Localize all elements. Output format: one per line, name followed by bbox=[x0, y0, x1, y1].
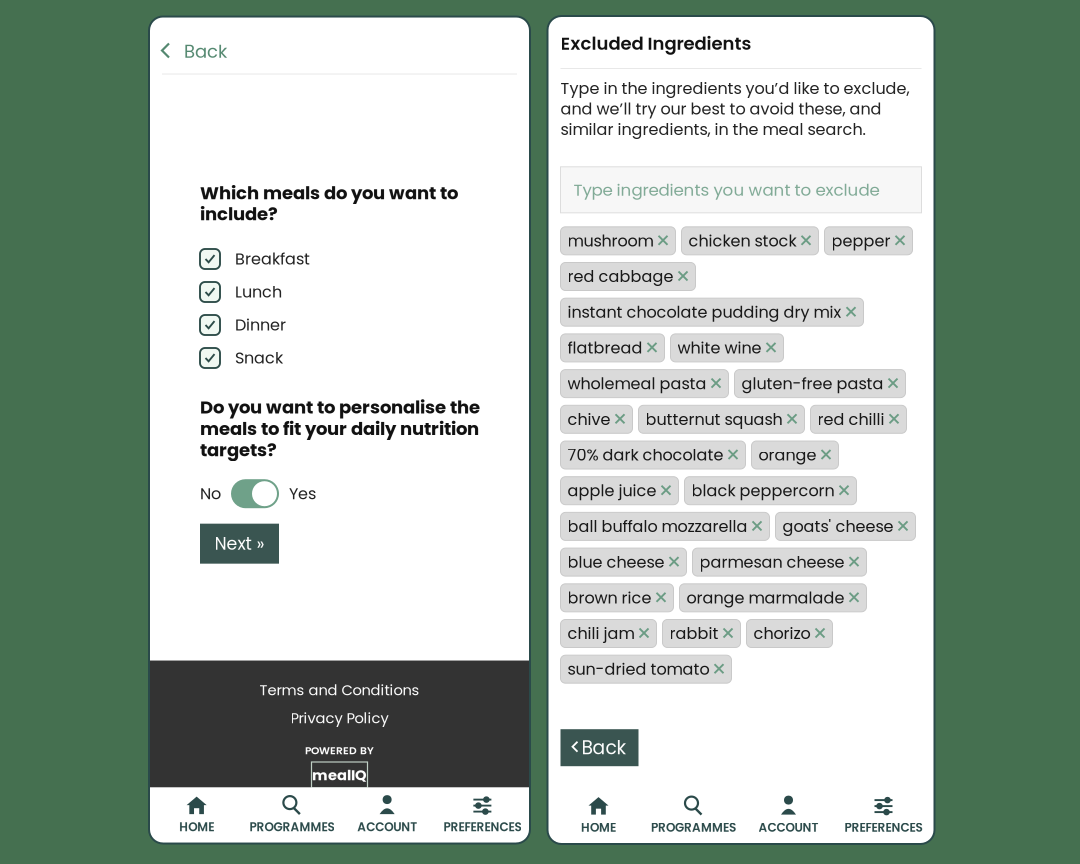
button[interactable]: brown rice bbox=[560, 584, 673, 612]
staticText: ball buffalo mozzarella bbox=[567, 515, 747, 538]
staticText: ACCOUNT bbox=[357, 819, 417, 835]
staticText: gluten-free pasta bbox=[741, 372, 883, 395]
staticText: red cabbage bbox=[567, 265, 673, 288]
button[interactable]: chicken stock bbox=[681, 227, 818, 255]
button[interactable]: goats' cheese bbox=[775, 512, 915, 540]
staticText: Terms and Conditions bbox=[259, 680, 419, 700]
staticText: Do you want to personalise the bbox=[200, 395, 480, 420]
button[interactable]: orange bbox=[751, 441, 838, 469]
button[interactable]: PROGRAMMES bbox=[646, 796, 741, 836]
staticText: white wine bbox=[677, 337, 761, 359]
button[interactable]: Lunch bbox=[200, 275, 479, 308]
staticText: POWERED BY bbox=[305, 743, 374, 758]
staticText: meals to fit your daily nutrition bbox=[200, 416, 479, 441]
button[interactable]: instant chocolate pudding dry mix bbox=[560, 298, 863, 326]
staticText: Snack bbox=[235, 347, 283, 369]
button[interactable]: sun-dried tomato bbox=[560, 655, 731, 683]
staticText: chive bbox=[567, 408, 610, 430]
staticText: brown rice bbox=[567, 587, 651, 609]
staticText: red chilli bbox=[817, 408, 884, 430]
button[interactable]: apple juice bbox=[560, 477, 678, 505]
staticText: Back bbox=[581, 735, 626, 761]
staticText: Dinner bbox=[235, 314, 286, 336]
button[interactable]: PREFERENCES bbox=[435, 796, 530, 835]
button[interactable]: ball buffalo mozzarella bbox=[560, 512, 769, 540]
button[interactable]: black peppercorn bbox=[684, 477, 856, 505]
staticText: 70% dark chocolate bbox=[567, 444, 723, 466]
button[interactable]: flatbread bbox=[560, 334, 664, 362]
staticText: parmesan cheese bbox=[699, 551, 844, 573]
button[interactable]: wholemeal pasta bbox=[560, 370, 728, 398]
button[interactable]: Back bbox=[149, 16, 530, 73]
button[interactable]: orange marmalade bbox=[679, 584, 866, 612]
staticText: similar ingredients, in the meal search. bbox=[560, 118, 865, 141]
staticText: Type ingredients you want to exclude bbox=[573, 178, 879, 201]
staticText: blue cheese bbox=[567, 551, 664, 573]
staticText: Privacy Policy bbox=[290, 708, 388, 728]
button[interactable]: chive bbox=[560, 405, 632, 433]
button[interactable] bbox=[231, 479, 279, 508]
staticText: targets? bbox=[200, 437, 277, 463]
button[interactable]: HOME bbox=[149, 796, 244, 835]
staticText: and we’ll try our best to avoid these, a… bbox=[560, 98, 881, 120]
button[interactable]: 70% dark chocolate bbox=[560, 441, 745, 469]
staticText: chorizo bbox=[753, 622, 810, 645]
staticText: Back bbox=[184, 39, 227, 64]
staticText: sun-dried tomato bbox=[567, 658, 709, 680]
button[interactable]: parmesan cheese bbox=[692, 548, 866, 576]
button[interactable]: Dinner bbox=[200, 308, 479, 341]
button[interactable]: gluten-free pasta bbox=[734, 370, 905, 398]
button[interactable]: PREFERENCES bbox=[836, 796, 931, 836]
button[interactable]: mushroom bbox=[560, 227, 675, 255]
staticText: HOME bbox=[179, 819, 214, 835]
button[interactable]: rabbit bbox=[662, 619, 740, 647]
button[interactable]: PROGRAMMES bbox=[244, 796, 339, 835]
staticText: rabbit bbox=[669, 622, 718, 645]
staticText: orange bbox=[758, 444, 816, 466]
button[interactable]: HOME bbox=[551, 796, 646, 836]
staticText: wholemeal pasta bbox=[567, 372, 706, 395]
staticText: instant chocolate pudding dry mix bbox=[567, 301, 841, 323]
staticText: Excluded Ingredients bbox=[560, 31, 751, 56]
staticText: Lunch bbox=[235, 281, 282, 303]
staticText: Next » bbox=[214, 532, 264, 556]
staticText: chili jam bbox=[567, 622, 634, 645]
button[interactable]: white wine bbox=[670, 334, 783, 362]
staticText: flatbread bbox=[567, 337, 642, 359]
staticText: PROGRAMMES bbox=[249, 819, 334, 835]
staticText: Yes bbox=[289, 482, 316, 505]
button[interactable]: Breakfast bbox=[200, 242, 479, 275]
staticText: apple juice bbox=[567, 479, 656, 502]
button[interactable]: Back bbox=[560, 729, 638, 766]
button[interactable]: red cabbage bbox=[560, 262, 695, 290]
button[interactable]: blue cheese bbox=[560, 548, 686, 576]
staticText: black peppercorn bbox=[691, 479, 834, 502]
button[interactable]: butternut squash bbox=[638, 405, 804, 433]
button[interactable]: Privacy Policy bbox=[290, 710, 388, 726]
staticText: PREFERENCES bbox=[443, 819, 521, 835]
staticText: No bbox=[200, 482, 221, 505]
button[interactable]: ACCOUNT bbox=[741, 796, 836, 836]
staticText: butternut squash bbox=[645, 408, 782, 430]
button[interactable]: Snack bbox=[200, 341, 479, 374]
staticText: mealIQ bbox=[312, 765, 367, 785]
staticText: PREFERENCES bbox=[844, 819, 922, 836]
button[interactable]: chili jam bbox=[560, 619, 656, 647]
staticText: chicken stock bbox=[688, 230, 796, 252]
staticText: HOME bbox=[581, 819, 616, 836]
staticText: ACCOUNT bbox=[758, 819, 818, 836]
button[interactable]: red chilli bbox=[810, 405, 906, 433]
staticText: orange marmalade bbox=[686, 587, 844, 609]
button[interactable]: pepper bbox=[824, 227, 912, 255]
staticText: PROGRAMMES bbox=[651, 819, 736, 836]
staticText: mushroom bbox=[567, 230, 653, 252]
staticText: pepper bbox=[831, 230, 890, 252]
staticText: Breakfast bbox=[235, 248, 310, 270]
staticText: Which meals do you want to bbox=[200, 180, 458, 206]
button[interactable]: ACCOUNT bbox=[339, 796, 435, 835]
button[interactable]: Terms and Conditions bbox=[259, 682, 419, 698]
staticText: Type in the ingredients you’d like to ex… bbox=[560, 77, 909, 99]
button[interactable]: Next » bbox=[200, 524, 279, 564]
button[interactable]: chorizo bbox=[746, 619, 832, 647]
staticText: goats' cheese bbox=[782, 515, 893, 538]
